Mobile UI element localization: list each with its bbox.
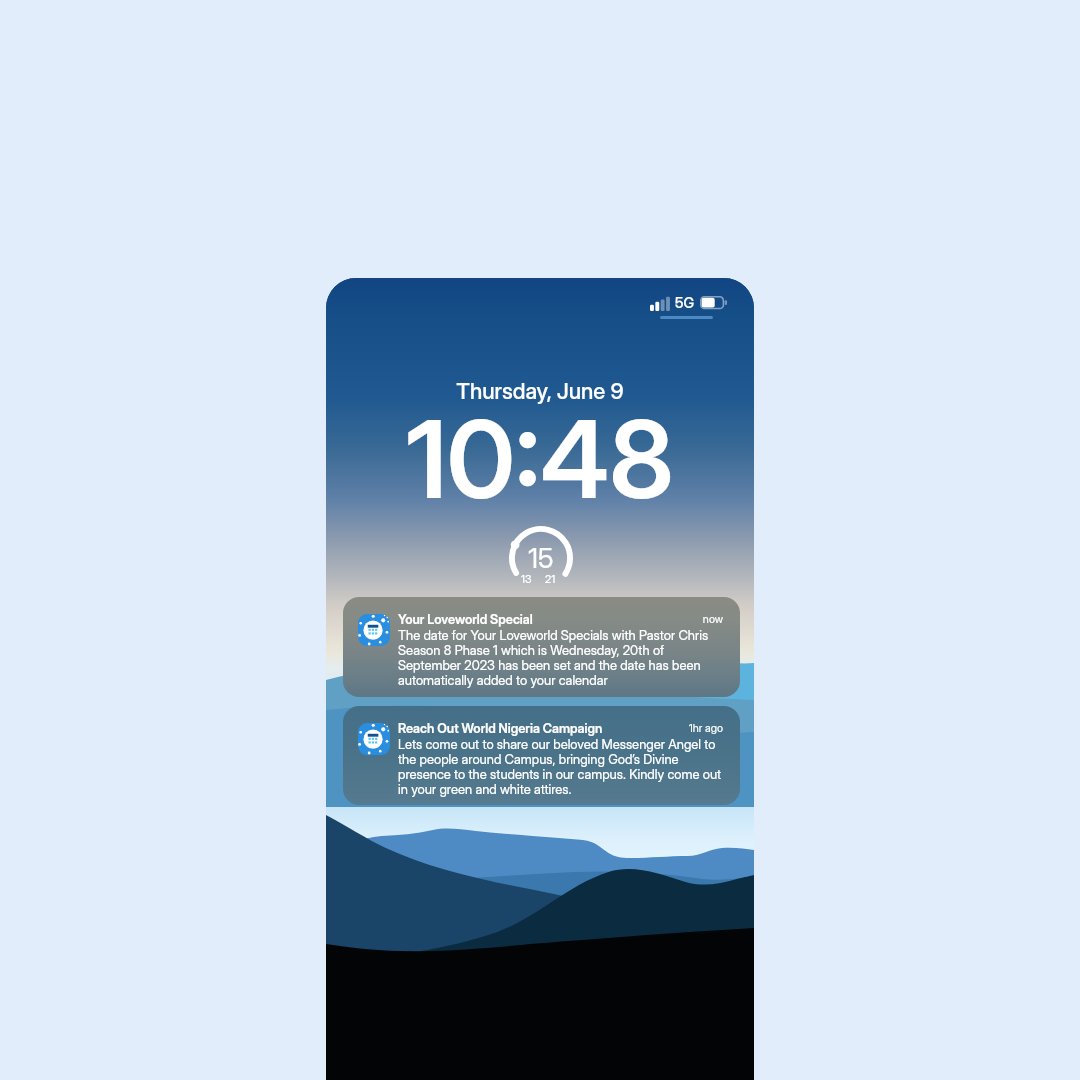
staticText: 10:48	[326, 394, 754, 523]
staticText: Reach Out World Nigeria Campaign	[398, 721, 603, 736]
other: Temperature 15 degrees	[509, 526, 573, 590]
staticText: 5G	[675, 294, 695, 312]
staticText: Thursday, June 9	[326, 378, 754, 405]
staticText: now	[603, 612, 723, 625]
staticText: 1hr ago	[603, 721, 723, 734]
other: Loveworld app	[358, 723, 390, 755]
staticText: 13	[521, 572, 532, 585]
staticText: 21	[545, 572, 556, 585]
staticText: The date for Your Loveworld Specials wit…	[398, 627, 723, 688]
button[interactable]: Loveworld app	[343, 706, 740, 805]
button[interactable]: Loveworld app	[343, 597, 740, 697]
other: Loveworld app	[358, 614, 390, 646]
staticText: 15	[509, 542, 573, 575]
staticText: Your Loveworld Special	[398, 612, 533, 627]
staticText: Lets come out to share our beloved Messe…	[398, 736, 723, 797]
